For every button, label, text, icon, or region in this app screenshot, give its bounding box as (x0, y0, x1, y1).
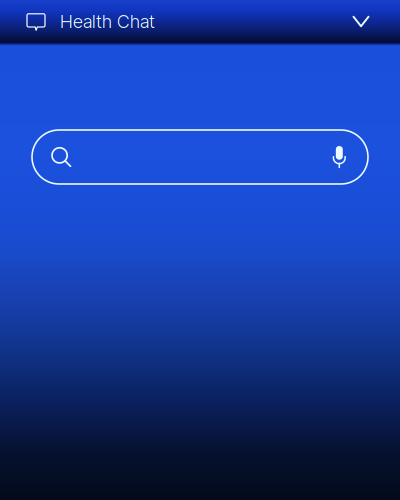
button[interactable]: Voice search (319, 144, 368, 170)
button[interactable]: Search (32, 130, 368, 184)
button[interactable]: Health Chat (0, 0, 163, 43)
button[interactable]: Collapse (338, 0, 384, 43)
staticText: Health Chat (60, 11, 155, 32)
